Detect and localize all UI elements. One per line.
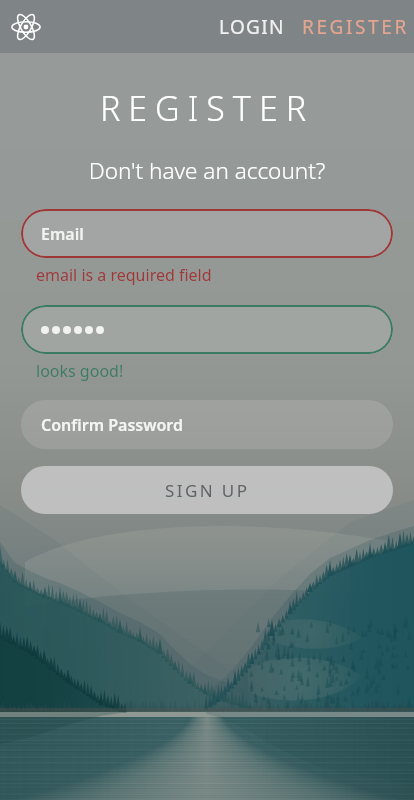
staticText: REGISTER — [302, 14, 409, 40]
button[interactable]: Email — [21, 209, 393, 258]
button[interactable]: REGISTER — [294, 4, 414, 50]
button[interactable]: Confirm Password — [21, 400, 393, 449]
staticText: Don't have an account? — [0, 155, 414, 186]
staticText: LOGIN — [219, 14, 285, 40]
button[interactable]: Home — [6, 7, 46, 47]
button[interactable]: LOGIN — [210, 4, 294, 50]
staticText: Confirm Password — [41, 414, 183, 436]
staticText: Email — [41, 223, 84, 245]
staticText: looks good! — [36, 360, 124, 382]
staticText: SIGN UP — [165, 479, 250, 502]
button[interactable] — [21, 305, 393, 354]
staticText: REGISTER — [0, 85, 414, 131]
staticText: email is a required field — [36, 264, 212, 286]
button[interactable]: SIGN UP — [21, 466, 393, 514]
